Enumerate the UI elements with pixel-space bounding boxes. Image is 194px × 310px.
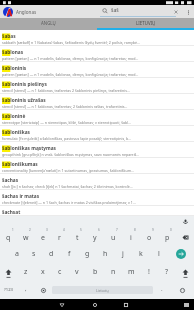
button[interactable]: šabloninis piešinys (0, 78, 194, 94)
button[interactable]: Recents (117, 299, 135, 310)
button[interactable]: c (51, 263, 68, 281)
staticText: šabloninis užrašas (2, 97, 46, 104)
staticText: šabloniškas (2, 129, 30, 136)
button[interactable]: 6 (86, 227, 104, 245)
button[interactable]: 9 (140, 227, 158, 245)
button[interactable]: šabloniškas (0, 126, 194, 142)
button[interactable]: z (17, 263, 34, 281)
button[interactable]: 8 (122, 227, 140, 245)
staticText: r (58, 233, 61, 243)
button[interactable]: šachsat (0, 206, 194, 216)
button[interactable]: Clear (170, 6, 182, 18)
button[interactable]: More options (182, 6, 194, 18)
staticText: conventionality [kənvenʃəˈnæləti] n 1 su… (2, 168, 134, 173)
staticText: 5 (80, 228, 82, 232)
button[interactable]: šachas ir matas (0, 190, 194, 206)
staticText: groupthink [ɡruːpθiŋk] n vnsk. šablonišk… (2, 152, 140, 157)
button[interactable]: šabloninis (0, 62, 194, 78)
button[interactable]: Shift (0, 263, 17, 281)
button[interactable]: šabas (0, 30, 194, 46)
staticText: x (41, 267, 45, 277)
staticText: 2 (29, 228, 31, 232)
staticText: Lietuvių (96, 288, 109, 293)
button[interactable]: šabloninė (0, 110, 194, 126)
staticText: 9 (152, 228, 154, 232)
button[interactable]: l (150, 245, 168, 263)
button[interactable]: s (25, 245, 42, 263)
staticText: LIETUVIŲ (136, 20, 156, 26)
button[interactable]: šachas (0, 174, 194, 190)
button[interactable]: f (60, 245, 78, 263)
button[interactable]: šabloniškumas (0, 158, 194, 174)
button[interactable]: h (96, 245, 114, 263)
button[interactable]: 1 (0, 227, 17, 245)
staticText: 3 (46, 228, 48, 232)
staticText: e (41, 233, 45, 243)
button[interactable]: 5 (68, 227, 86, 245)
button[interactable]: šabloninis užrašas (0, 94, 194, 110)
button[interactable]: v (68, 263, 86, 281)
staticText: , (25, 285, 27, 293)
button[interactable]: Lietuvių (52, 281, 153, 299)
staticText: s (32, 249, 36, 259)
staticText: ! (148, 267, 150, 277)
button[interactable]: Enter (168, 245, 194, 263)
staticText: w (23, 233, 29, 243)
button[interactable]: m (122, 263, 140, 281)
button[interactable]: ? (158, 263, 176, 281)
staticText: n (111, 267, 116, 277)
staticText: 7 (116, 228, 118, 232)
button[interactable]: Settings (34, 281, 52, 299)
button[interactable]: k (132, 245, 150, 263)
staticText: 0 (170, 228, 172, 232)
button[interactable]: LIETUVIŲ (97, 18, 194, 28)
button[interactable]: Emoji (171, 281, 194, 299)
staticText: c (58, 267, 62, 277)
button[interactable]: ANGLŲ (0, 18, 97, 28)
staticText: y (93, 233, 97, 243)
staticText: h (103, 249, 108, 259)
button[interactable]: a (8, 245, 25, 263)
staticText: 8 (134, 228, 136, 232)
button[interactable]: ! (140, 263, 158, 281)
button[interactable]: 0 (158, 227, 176, 245)
button[interactable]: b (86, 263, 104, 281)
staticText: stereotype [steriətaip] — n stereotipas,… (2, 120, 132, 125)
button[interactable]: j (114, 245, 132, 263)
button[interactable]: ?123 (0, 281, 17, 299)
staticText: shah [ʃɑː] n šachas; check [tʃek] n 1 ša… (2, 184, 133, 189)
button[interactable]: , (17, 281, 34, 299)
button[interactable]: g (78, 245, 96, 263)
staticText: p (165, 233, 170, 243)
staticText: šabloninis piešinys (2, 81, 47, 88)
button[interactable]: n (104, 263, 122, 281)
staticText: formulaic [fɔːmjuleiik] a šabloniškas, p… (2, 136, 132, 141)
button[interactable]: 2 (17, 227, 34, 245)
button[interactable]: d (42, 245, 60, 263)
button[interactable]: Voice input (176, 216, 194, 227)
button[interactable]: x (34, 263, 51, 281)
button[interactable]: Back (53, 299, 71, 310)
button[interactable]: 3 (34, 227, 51, 245)
staticText: šabloniškas mąstymas (2, 145, 56, 152)
staticText: t (76, 233, 79, 243)
button[interactable]: šaš (100, 5, 176, 18)
button[interactable]: Backspace (176, 227, 194, 245)
button[interactable]: Hide keyboard (179, 299, 193, 310)
button[interactable]: Home (86, 299, 104, 310)
button[interactable]: 4 (51, 227, 68, 245)
staticText: z (24, 267, 28, 277)
button[interactable]: šabloniškas mąstymas (0, 142, 194, 158)
button[interactable]: Shift (176, 263, 194, 281)
staticText: 4 (63, 228, 65, 232)
staticText: i (130, 233, 132, 243)
staticText: k (139, 249, 143, 259)
staticText: šachas (2, 177, 19, 184)
button[interactable]: šablonas (0, 46, 194, 62)
staticText: šabloninė (2, 113, 26, 120)
staticText: Anglonas (16, 9, 37, 15)
staticText: šachsat (2, 209, 21, 216)
button[interactable]: 7 (104, 227, 122, 245)
staticText: šachas ir matas (2, 193, 40, 200)
